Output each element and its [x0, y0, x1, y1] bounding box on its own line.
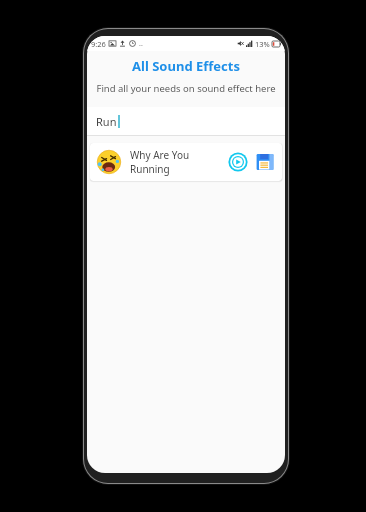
staticText: Why Are You Running [130, 148, 225, 176]
button[interactable]: Save [252, 149, 278, 175]
staticText: Find all your needs on sound effect here [87, 82, 285, 95]
button[interactable]: Run [87, 107, 285, 135]
staticText: .. [139, 39, 143, 49]
staticText: 9:26 [91, 39, 106, 49]
button[interactable]: Play [225, 149, 251, 175]
staticText: 13% [255, 39, 270, 49]
staticText: All Sound Effects [87, 57, 285, 75]
staticText: Run [96, 114, 117, 129]
button[interactable]: Why Are You Running [90, 143, 282, 181]
